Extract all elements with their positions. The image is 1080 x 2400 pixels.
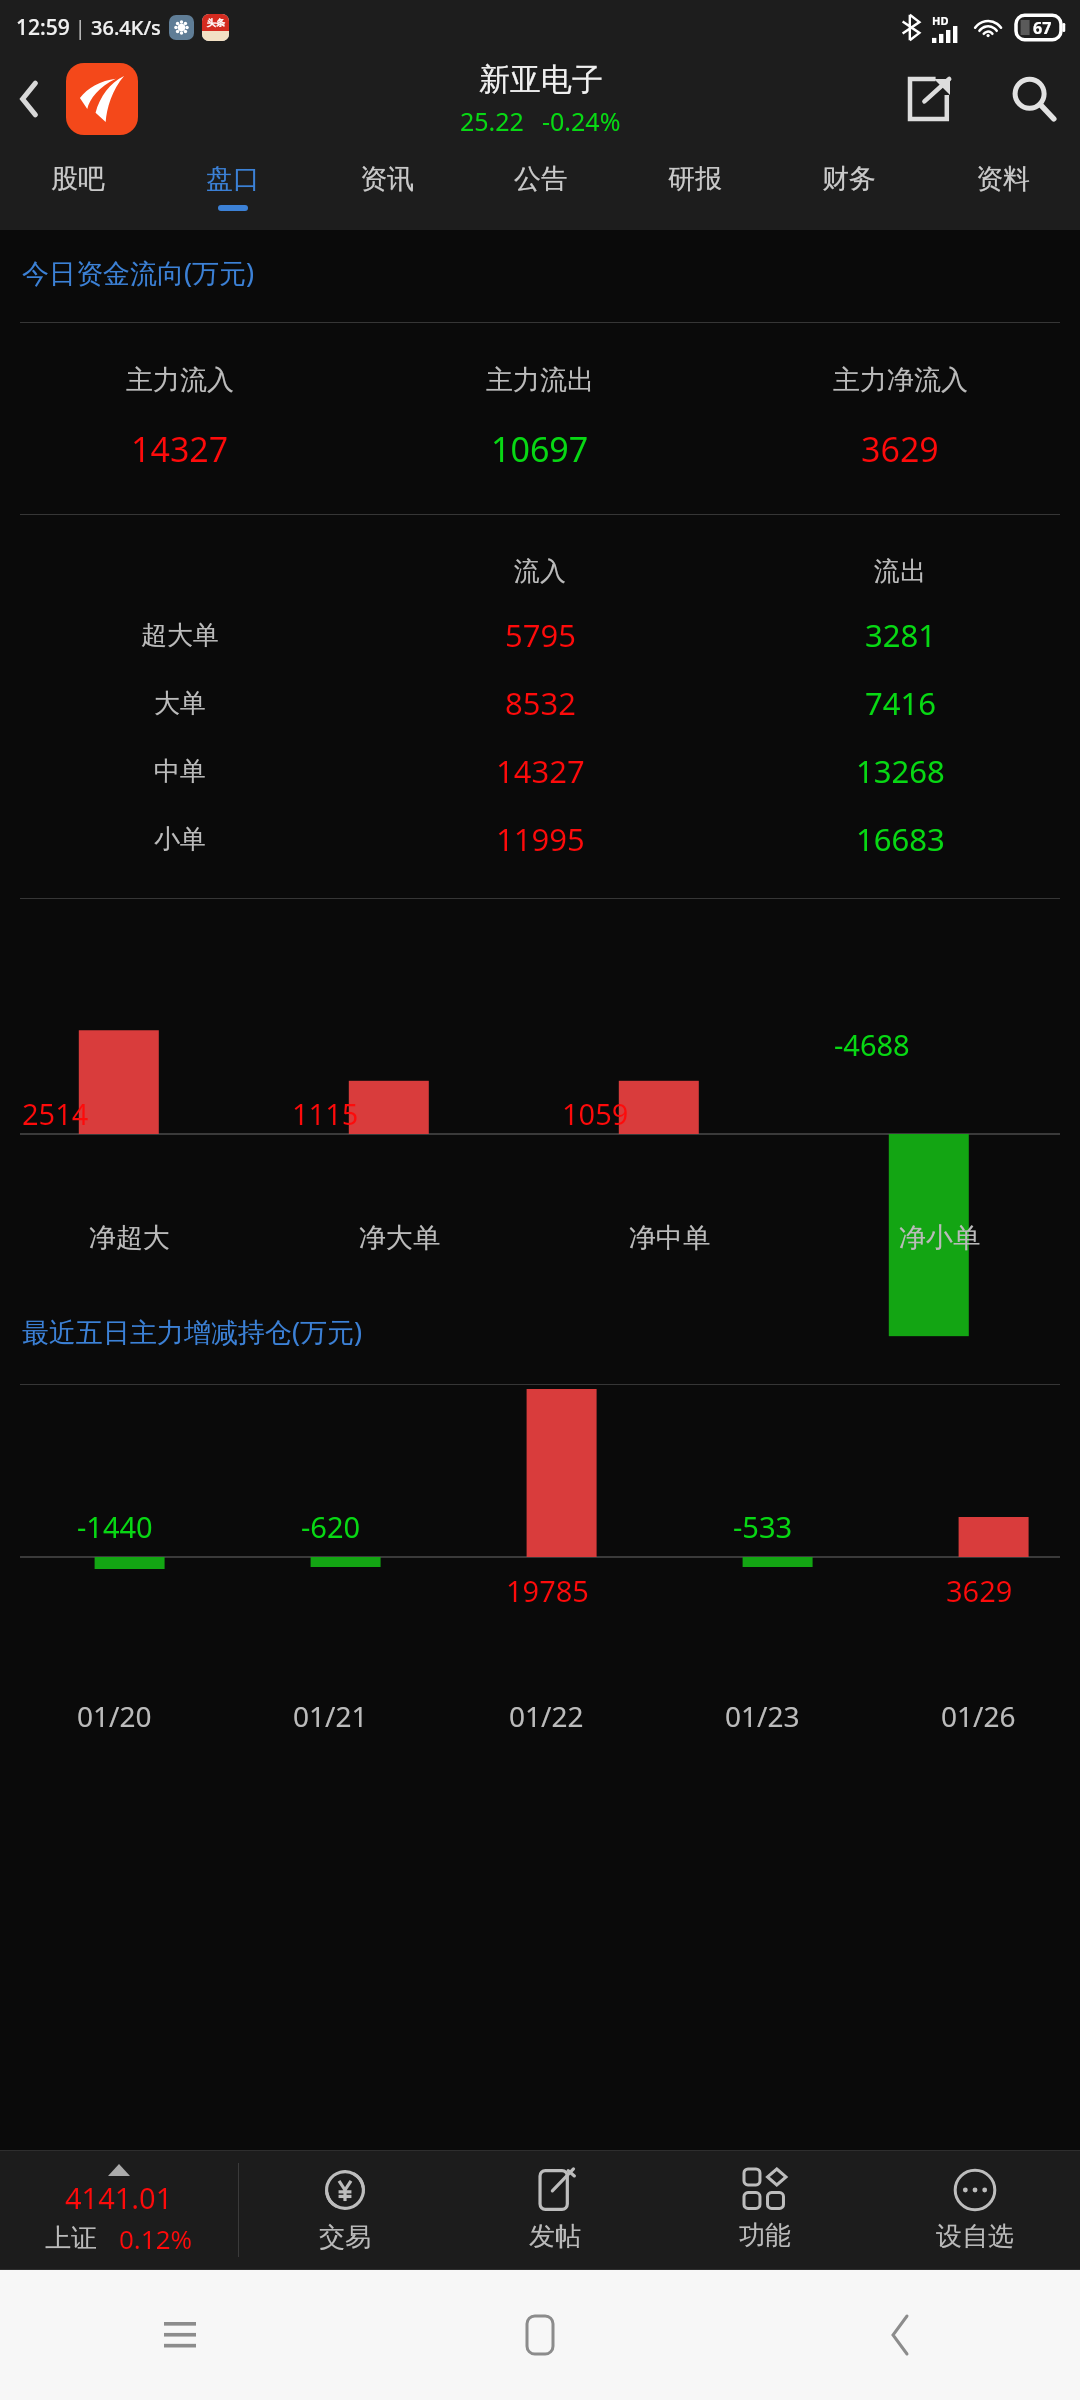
staticText: 01/20 [77, 1697, 152, 1735]
staticText: 12:59 [16, 13, 70, 42]
staticText: -0.24% [542, 104, 621, 138]
staticText: 功能 [739, 2219, 791, 2252]
staticText: 净小单 [899, 1221, 980, 1255]
staticText: 16683 [856, 818, 945, 860]
staticText: 净中单 [629, 1221, 710, 1255]
staticText: 小单 [154, 823, 206, 856]
staticText: 研报 [668, 162, 722, 196]
staticText: 3629 [861, 426, 939, 472]
button[interactable]: Recents [0, 2270, 360, 2400]
staticText: 净大单 [359, 1221, 440, 1255]
staticText: 净超大 [89, 1221, 170, 1255]
staticText: 上证 [45, 2222, 97, 2255]
staticText: 主力流入 [126, 363, 234, 397]
button[interactable]: 发帖 [450, 2151, 660, 2269]
button[interactable]: Share [890, 55, 970, 143]
staticText: 7416 [865, 682, 936, 724]
staticText: 1059 [562, 1094, 629, 1133]
button[interactable]: App logo [66, 63, 138, 135]
staticText: 设自选 [936, 2220, 1014, 2253]
button[interactable]: Back [720, 2270, 1080, 2400]
button[interactable]: 4141.01 [0, 2151, 238, 2269]
staticText: 10697 [491, 426, 589, 472]
staticText: 公告 [514, 162, 568, 196]
staticText: 中单 [154, 755, 206, 788]
staticText: 最近五日主力增减持仓(万元) [22, 1313, 363, 1350]
staticText: 14327 [131, 426, 229, 472]
staticText: 25.22 [460, 104, 524, 138]
staticText: HD [932, 13, 949, 28]
staticText: 36.4K/s [91, 14, 161, 41]
button[interactable]: 交易 [239, 2151, 450, 2269]
staticText: 67 [1033, 17, 1052, 39]
staticText: 大单 [154, 687, 206, 720]
staticText: 盘口 [206, 162, 260, 196]
staticText: 13268 [856, 750, 945, 792]
staticText: 2514 [22, 1094, 89, 1133]
button[interactable]: 设自选 [870, 2151, 1080, 2269]
staticText: -533 [733, 1507, 793, 1546]
staticText: 0.12% [119, 2221, 193, 2256]
staticText: 主力净流入 [833, 363, 968, 397]
staticText: 14327 [496, 750, 585, 792]
staticText: 01/26 [941, 1697, 1016, 1735]
staticText: 新亚电子 [479, 60, 603, 99]
staticText: 股吧 [51, 162, 105, 196]
staticText: 流出 [874, 555, 926, 588]
staticText: 流入 [514, 555, 566, 588]
staticText: 超大单 [141, 619, 219, 652]
staticText: | [70, 15, 91, 41]
staticText: 资料 [976, 162, 1030, 196]
button[interactable]: Home [360, 2270, 720, 2400]
staticText: 3629 [946, 1571, 1013, 1610]
staticText: 01/23 [725, 1697, 800, 1735]
staticText: 5795 [505, 614, 576, 656]
staticText: 1115 [292, 1094, 359, 1133]
button[interactable]: 功能 [660, 2151, 870, 2269]
staticText: 交易 [319, 2221, 371, 2254]
staticText: 01/21 [293, 1697, 368, 1735]
staticText: 今日资金流向(万元) [22, 254, 255, 291]
button[interactable]: 财务 [772, 143, 926, 230]
button[interactable]: 盘口 [155, 143, 310, 230]
staticText: 01/22 [509, 1697, 584, 1735]
button[interactable]: 股吧 [0, 143, 155, 230]
button[interactable]: Search [988, 55, 1080, 143]
button[interactable]: Back [0, 55, 58, 143]
staticText: 头条 [207, 17, 225, 28]
staticText: 发帖 [529, 2220, 581, 2253]
staticText: -620 [301, 1507, 361, 1546]
staticText: 主力流出 [486, 363, 594, 397]
staticText: 4141.01 [65, 2178, 173, 2217]
staticText: 资讯 [360, 162, 414, 196]
staticText: 8532 [505, 682, 576, 724]
staticText: 11995 [496, 818, 585, 860]
staticText: 财务 [822, 162, 876, 196]
button[interactable]: 公告 [464, 143, 618, 230]
staticText: -1440 [77, 1507, 153, 1546]
button[interactable]: 资讯 [310, 143, 464, 230]
button[interactable]: 资料 [926, 143, 1080, 230]
staticText: 19785 [506, 1571, 589, 1610]
staticText: 3281 [865, 614, 936, 656]
staticText: -4688 [834, 1025, 910, 1064]
button[interactable]: 研报 [618, 143, 772, 230]
